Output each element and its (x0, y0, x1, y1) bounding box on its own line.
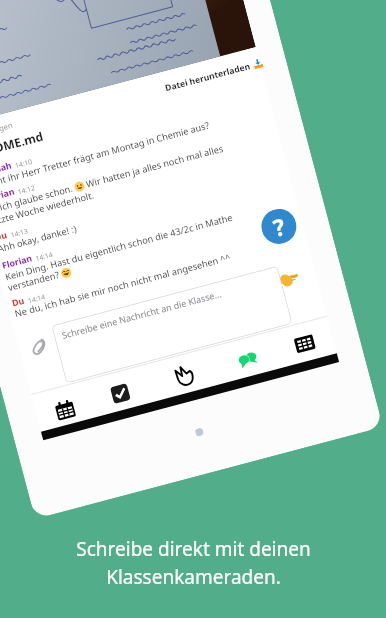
button[interactable]: Datei herunterladen (163, 56, 265, 95)
staticText: Florian (0, 186, 16, 205)
staticText: Kennt ihr Herr Tretter frägt am Montag i… (0, 119, 211, 191)
button[interactable]: Hilfe (257, 205, 300, 248)
staticText: Florian (1, 252, 34, 272)
staticText: 14:14 (27, 292, 47, 305)
button[interactable]: Symbole (236, 347, 259, 370)
staticText: Schreibe eine Nachricht an die Klasse... (60, 287, 223, 341)
staticText: 14:14 (34, 250, 54, 263)
staticText: Ahh okay, danke! :) (0, 222, 79, 255)
staticText: verstanden? (6, 268, 61, 294)
staticText: Du (0, 229, 9, 244)
staticText: Schreibe direkt mit deinen Klassenkamera… (76, 536, 311, 590)
staticText: 14:10 (14, 157, 34, 170)
button[interactable]: Datei anhaengen (27, 334, 51, 359)
button[interactable]: Objekte (110, 383, 131, 404)
staticText: README.md (0, 127, 45, 160)
staticText: Du (11, 295, 26, 309)
staticText: Ja, ich glaube schon. (0, 182, 74, 217)
button[interactable]: Kalender (54, 399, 76, 421)
staticText: ? (270, 210, 288, 243)
staticText: 14:13 (10, 226, 29, 240)
button[interactable]: Tastatur (293, 332, 316, 355)
button[interactable]: Schreibe eine Nachricht an die Klasse... (51, 266, 293, 383)
button[interactable]: Smileys (171, 362, 198, 389)
staticText: letzte Woche wiederholt. (0, 188, 96, 228)
staticText: Wir hatten ja alles noch mal alles (84, 142, 225, 191)
staticText: Hannah (0, 159, 13, 180)
staticText: Kein Ding. Hast du eigentlich schon die … (4, 211, 234, 283)
staticText: Ne du, ich hab sie mir noch nicht mal an… (13, 250, 232, 320)
staticText: 14:12 (17, 183, 36, 196)
staticText: Datei herunterladen (164, 60, 252, 94)
staticText: vor 27 Tagen (0, 120, 14, 141)
